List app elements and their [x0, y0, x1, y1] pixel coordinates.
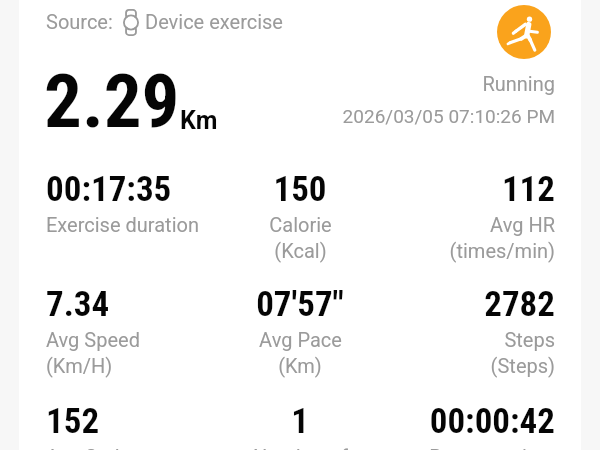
button[interactable] [210, 168, 390, 240]
staticText: Source: [46, 10, 113, 33]
button[interactable]: Source: [46, 8, 283, 35]
staticText: 152 [46, 401, 100, 442]
staticText: 7.34 [46, 284, 110, 325]
staticText: Calorie [269, 213, 332, 236]
button[interactable]: Running exercise type [497, 5, 551, 59]
button[interactable] [210, 400, 390, 450]
staticText: 150 [273, 169, 327, 210]
staticText: Km [180, 106, 218, 135]
staticText: Exercise duration [46, 213, 199, 236]
button[interactable] [375, 400, 555, 450]
staticText: 2.29 [44, 57, 180, 145]
staticText: (times/min) [449, 239, 555, 262]
staticText: Avg HR [490, 213, 555, 236]
staticText: 07'57" [256, 284, 344, 325]
staticText: 2782 [484, 284, 555, 325]
staticText: 1 [291, 401, 309, 442]
staticText: Avg Cadence [46, 445, 163, 450]
staticText: (Kcal) [274, 239, 327, 262]
staticText: Device exercise [145, 10, 283, 33]
staticText: (Km/H) [46, 354, 113, 377]
button[interactable] [46, 283, 226, 355]
staticText: (Km) [278, 354, 322, 377]
staticText: Number of [253, 445, 348, 450]
button[interactable] [46, 400, 226, 450]
button[interactable] [210, 283, 390, 355]
button[interactable] [375, 168, 555, 240]
staticText: Recovery time [429, 445, 555, 450]
staticText: Steps [504, 328, 555, 351]
staticText: 112 [501, 169, 555, 210]
button[interactable] [375, 283, 555, 355]
staticText: Avg Speed [46, 328, 140, 351]
staticText: (Steps) [490, 354, 555, 377]
staticText: 00:17:35 [46, 169, 172, 210]
staticText: Running [482, 72, 555, 95]
staticText: Avg Pace [259, 328, 342, 351]
staticText: 00:00:42 [429, 401, 555, 442]
staticText: 2026/03/05 07:10:26 PM [342, 105, 555, 127]
button[interactable] [46, 168, 226, 220]
